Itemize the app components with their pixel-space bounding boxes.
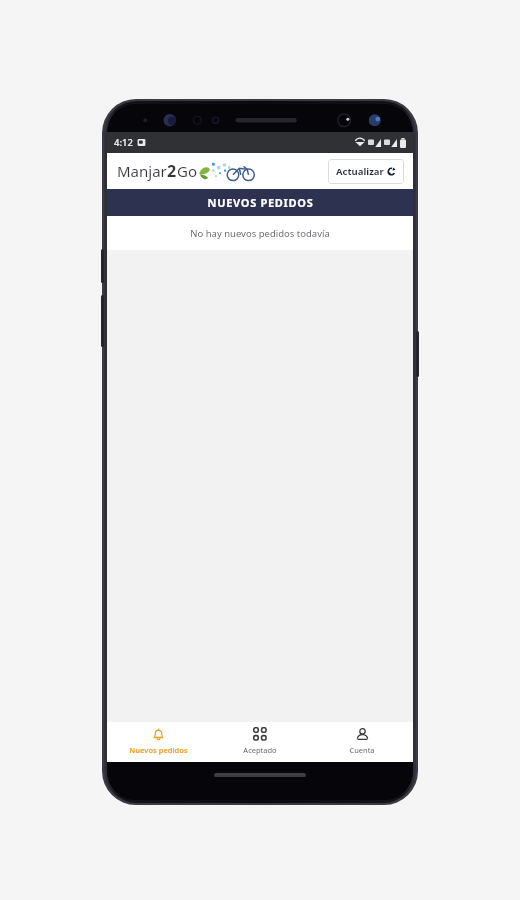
button[interactable]: Cuenta (311, 722, 413, 762)
staticText: Cuenta (349, 745, 375, 755)
button[interactable]: Actualizar (328, 159, 404, 184)
staticText: Actualizar (336, 165, 384, 178)
staticText: 4:12 (114, 136, 133, 149)
button[interactable]: Aceptado (209, 722, 311, 762)
staticText: Manjar (117, 161, 167, 181)
staticText: NUEVOS PEDIDOS (207, 195, 314, 210)
button[interactable]: Nuevos pedidos (107, 722, 209, 762)
staticText: Nuevos pedidos (129, 745, 188, 755)
staticText: 2 (167, 160, 177, 182)
staticText: No hay nuevos pedidos todavía (190, 227, 330, 240)
staticText: Aceptado (243, 745, 277, 755)
staticText: Go (177, 161, 197, 181)
